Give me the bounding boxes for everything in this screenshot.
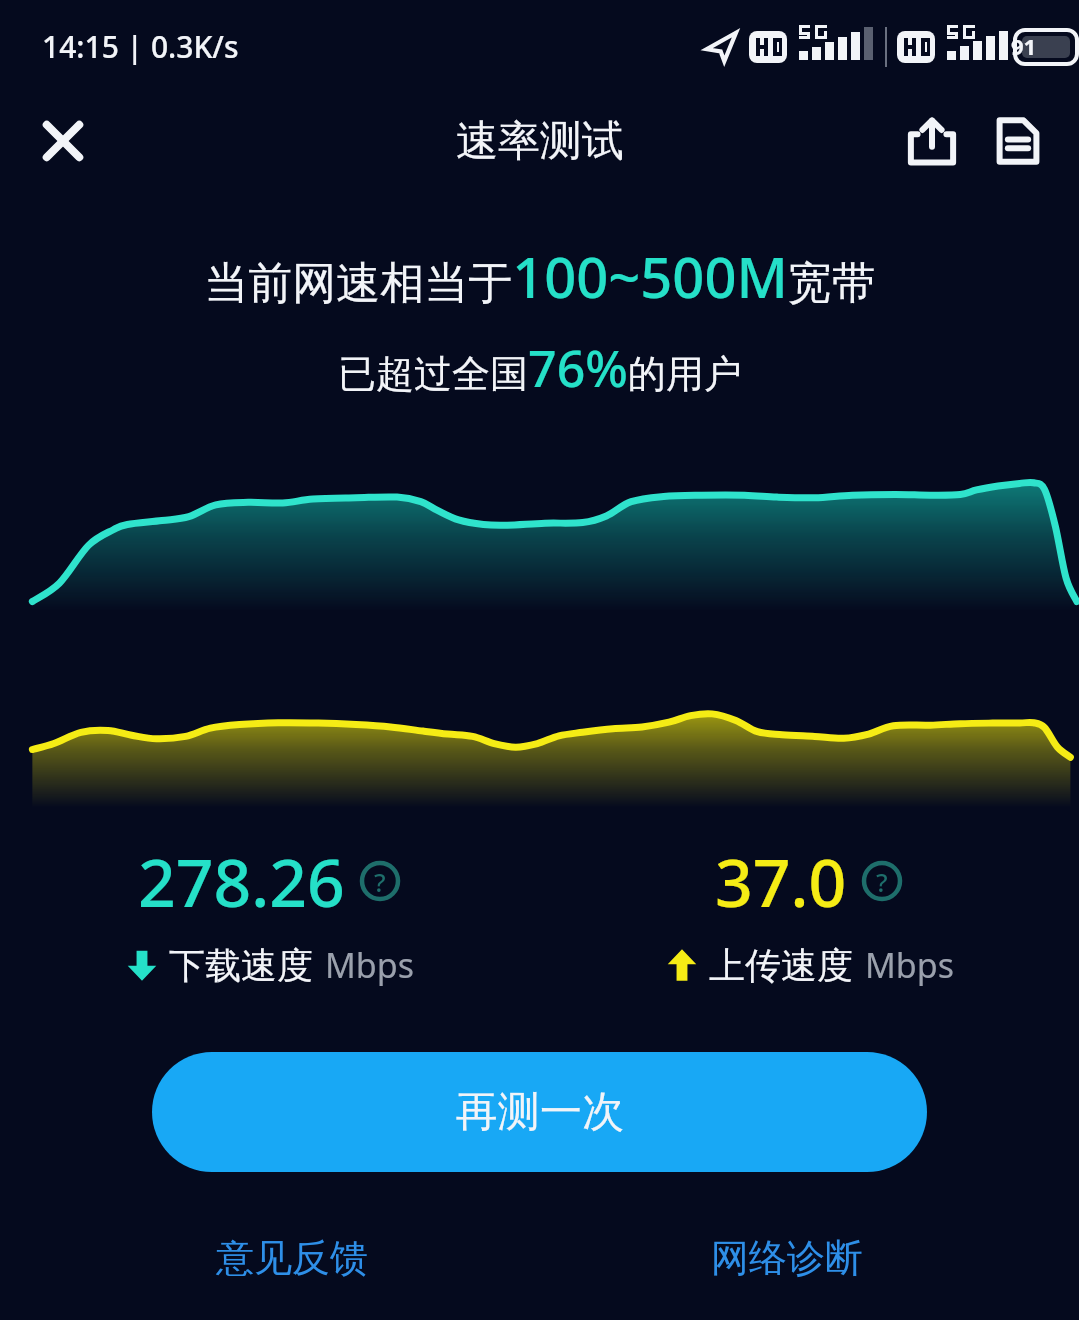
button[interactable]: 网络诊断 — [695, 1224, 879, 1292]
staticText: 速率测试 — [456, 115, 624, 168]
staticText: Mbps — [865, 942, 954, 988]
staticText: ? — [876, 864, 888, 899]
staticText: 已超过全国76%的用户 — [338, 334, 742, 402]
button[interactable]: 意见反馈 — [200, 1224, 384, 1292]
staticText: Mbps — [325, 942, 414, 988]
staticText: 再测一次 — [456, 1086, 624, 1139]
staticText: 下载速度 — [169, 943, 313, 988]
button[interactable]: Share — [889, 98, 975, 184]
staticText: 14:15 | 0.3K/s — [42, 26, 239, 67]
button[interactable]: 37.0 — [539, 836, 1079, 988]
staticText: 278.26 — [138, 836, 345, 926]
other: Info — [359, 860, 401, 902]
button[interactable]: 再测一次 — [152, 1052, 927, 1172]
staticText: ? — [374, 864, 386, 899]
staticText: 意见反馈 — [216, 1234, 368, 1282]
button[interactable]: Close — [20, 98, 106, 184]
button[interactable]: 278.26 — [0, 836, 539, 988]
staticText: 上传速度 — [709, 943, 853, 988]
staticText: 37.0 — [715, 836, 847, 926]
staticText: 当前网速相当于100~500M宽带 — [204, 238, 876, 314]
staticText: 91 — [1011, 31, 1037, 61]
button[interactable]: Records — [975, 98, 1061, 184]
other: Info — [861, 860, 903, 902]
staticText: 网络诊断 — [711, 1234, 863, 1282]
